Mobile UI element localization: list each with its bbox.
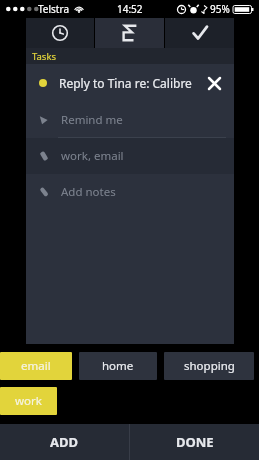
button[interactable]: email (0, 352, 72, 380)
staticText: Add notes (61, 184, 116, 200)
staticText: Tasks (32, 50, 57, 63)
button[interactable]: DONE (130, 424, 259, 460)
button[interactable]: Add notes (26, 174, 234, 210)
button[interactable]: Recent (26, 18, 94, 48)
staticText: ADD (50, 433, 79, 451)
button[interactable]: Close task (199, 68, 229, 98)
button[interactable]: Remind me (26, 102, 234, 138)
staticText: work, email (61, 148, 124, 164)
staticText: Telstra (38, 2, 70, 16)
staticText: 14:52 (117, 2, 143, 16)
button[interactable]: home (79, 352, 157, 380)
staticText: DONE (176, 433, 214, 451)
button[interactable]: shopping (164, 352, 254, 380)
staticText: Remind me (61, 112, 123, 128)
staticText: work (15, 393, 42, 409)
button[interactable]: Reply to Tina re: Calibre (26, 64, 234, 102)
button[interactable]: work, email (26, 138, 234, 174)
button[interactable]: Flag (95, 18, 164, 48)
button[interactable]: Done (165, 18, 234, 48)
staticText: shopping (184, 358, 235, 374)
staticText: home (102, 358, 134, 374)
staticText: email (21, 358, 51, 374)
staticText: 95% (210, 2, 230, 16)
staticText: Reply to Tina re: Calibre (59, 75, 192, 91)
button[interactable]: work (0, 387, 57, 415)
button[interactable]: ADD (0, 424, 129, 460)
